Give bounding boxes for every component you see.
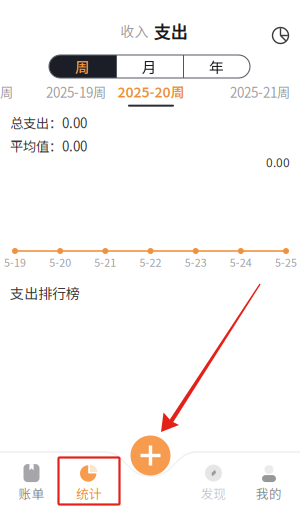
staticText: 账单 [18,484,44,502]
button[interactable]: 2025-21周 [220,82,300,102]
button[interactable]: 年 [183,55,250,78]
button[interactable]: 我的 [241,461,297,505]
staticText: 5-21 [94,254,116,270]
staticText: 支出 [153,18,187,44]
button[interactable]: 周 [49,55,116,78]
staticText: 5-23 [185,254,207,270]
staticText: 平均值：0.00 [10,136,87,155]
staticText: 支出排行榜 [10,283,80,303]
staticText: 2025-20周 [117,81,184,102]
button[interactable]: 收入 [114,18,154,44]
staticText: 5-25 [275,254,297,270]
staticText: 2025-21周 [230,82,290,102]
button[interactable]: 统计 [61,461,117,505]
staticText: 统计 [76,484,102,502]
button[interactable]: 账单 [3,461,59,505]
button[interactable]: Chart [265,20,295,50]
staticText: 5-22 [139,254,161,270]
button[interactable]: 支出 [150,18,190,44]
staticText: 我的 [256,484,282,502]
staticText: 0.00 [266,153,290,171]
staticText: 周 [75,56,90,77]
staticText: 5-24 [230,254,252,270]
staticText: 月 [142,56,157,77]
staticText: 5-20 [49,254,71,270]
staticText: 收入 [120,21,148,41]
staticText: 年 [209,56,224,77]
button[interactable]: 周 [0,82,22,102]
staticText: 2025-19周 [46,82,106,102]
button[interactable]: 发现 [185,461,241,505]
staticText: 5-19 [4,254,26,270]
staticText: 发现 [200,484,226,502]
staticText: 周 [0,82,13,102]
button[interactable]: 2025-20周 [108,80,194,108]
button[interactable]: Add [128,433,172,477]
button[interactable]: 2025-19周 [36,82,116,102]
button[interactable]: 月 [116,55,183,78]
staticText: 总支出：0.00 [10,113,87,132]
